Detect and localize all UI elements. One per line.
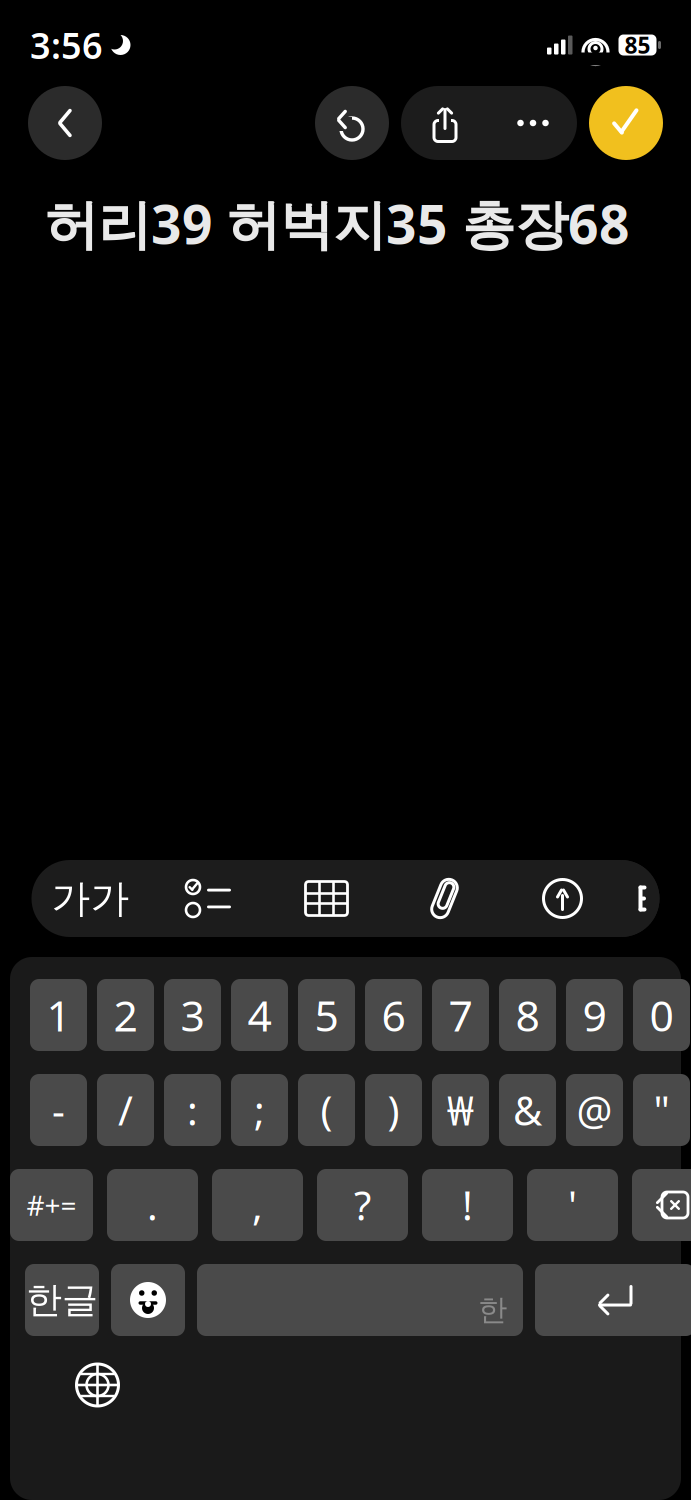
button[interactable]: 가가 (31, 860, 149, 937)
button[interactable]: @ (566, 1074, 623, 1146)
staticText: 1 (46, 987, 70, 1043)
button[interactable]: & (499, 1074, 556, 1146)
button[interactable]: " (633, 1074, 690, 1146)
button[interactable]: 2 (97, 979, 154, 1051)
button[interactable]: Done (589, 86, 663, 160)
button[interactable]: Attach (385, 860, 503, 937)
button[interactable]: ? (317, 1169, 408, 1241)
button[interactable]: Back (28, 86, 102, 160)
staticText: 가가 (51, 875, 129, 922)
button[interactable]: Undo (315, 86, 389, 160)
staticText: 0 (649, 987, 673, 1043)
button[interactable]: Share (401, 86, 489, 160)
button[interactable]: More (489, 86, 577, 160)
button[interactable]: . (107, 1169, 198, 1241)
staticText: ? (354, 1178, 371, 1231)
button[interactable]: : (164, 1074, 221, 1146)
staticText: & (513, 1083, 542, 1136)
staticText: " (653, 1083, 669, 1136)
staticText: ! (462, 1178, 473, 1231)
button[interactable]: ) (365, 1074, 422, 1146)
staticText: ' (568, 1178, 577, 1231)
staticText: ( (320, 1083, 332, 1136)
button[interactable]: ! (422, 1169, 513, 1241)
button[interactable]: Emoji (111, 1264, 185, 1336)
staticText: @ (576, 1083, 612, 1136)
button[interactable]: ' (527, 1169, 618, 1241)
button[interactable]: 7 (432, 979, 489, 1051)
button[interactable]: 4 (231, 979, 288, 1051)
staticText: 5 (314, 987, 338, 1043)
staticText: : (187, 1083, 198, 1136)
staticText: 9 (582, 987, 606, 1043)
button[interactable]: - (30, 1074, 87, 1146)
staticText: ₩ (447, 1083, 474, 1136)
button[interactable]: ₩ (432, 1074, 489, 1146)
button[interactable]: Delete (632, 1169, 691, 1241)
button[interactable]: 0 (633, 979, 690, 1051)
button[interactable]: #+= (10, 1169, 93, 1241)
staticText: 한글 (26, 1278, 98, 1322)
staticText: 2 (113, 987, 137, 1043)
button[interactable]: 1 (30, 979, 87, 1051)
button[interactable]: 9 (566, 979, 623, 1051)
button[interactable]: Checklist (149, 860, 267, 937)
button[interactable]: 8 (499, 979, 556, 1051)
staticText: ; (254, 1083, 265, 1136)
button[interactable]: Next keyboard (62, 1350, 132, 1420)
staticText: 7 (448, 987, 472, 1043)
staticText: / (118, 1083, 133, 1136)
button[interactable]: Return (535, 1264, 691, 1336)
button[interactable]: 한글 (25, 1264, 99, 1336)
staticText: - (52, 1083, 65, 1136)
staticText: , (252, 1178, 263, 1231)
button[interactable]: ( (298, 1074, 355, 1146)
staticText: 6 (381, 987, 405, 1043)
staticText: 한 (478, 1292, 507, 1328)
button[interactable]: / (97, 1074, 154, 1146)
staticText: 8 (515, 987, 539, 1043)
button[interactable]: 5 (298, 979, 355, 1051)
staticText: 4 (247, 987, 271, 1043)
button[interactable]: 6 (365, 979, 422, 1051)
staticText: 3 (180, 987, 204, 1043)
staticText: #+= (26, 1186, 76, 1224)
staticText: 85 (624, 30, 650, 60)
staticText: 허리39 허벅지35 총장68 (45, 188, 630, 259)
button[interactable]: 3 (164, 979, 221, 1051)
button[interactable]: Markup (503, 860, 621, 937)
button[interactable]: , (212, 1169, 303, 1241)
staticText: 3:56 (30, 21, 103, 69)
button[interactable]: More formatting (621, 860, 659, 937)
button[interactable]: Space (197, 1264, 523, 1336)
button[interactable]: Table (267, 860, 385, 937)
staticText: . (147, 1178, 158, 1231)
button[interactable]: ; (231, 1074, 288, 1146)
staticText: ) (387, 1083, 399, 1136)
